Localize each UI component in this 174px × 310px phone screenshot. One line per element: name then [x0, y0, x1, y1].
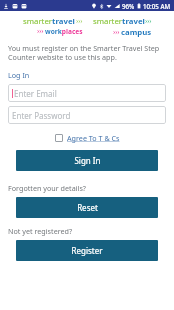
staticText: Not yet registered?: [8, 226, 73, 236]
staticText: workplaces: [45, 27, 83, 36]
button[interactable]: Register: [16, 240, 158, 261]
staticText: smartertravel: [93, 16, 145, 27]
staticText: campus: [121, 27, 152, 38]
staticText: Forgotten your details?: [8, 183, 86, 193]
button[interactable]: Reset: [16, 197, 158, 218]
staticText: Register: [71, 245, 103, 256]
staticText: 96%: [122, 2, 135, 10]
staticText: smartertravel: [23, 16, 75, 27]
staticText: Enter Password: [12, 110, 71, 121]
button[interactable]: Agree to terms checkbox: [52, 131, 123, 145]
other: Agree to terms checkbox: [55, 134, 63, 142]
staticText: Log In: [8, 70, 30, 80]
button[interactable]: Enter Password: [8, 106, 166, 124]
button[interactable]: Enter Email: [8, 84, 166, 102]
staticText: Reset: [77, 202, 98, 213]
staticText: Enter Email: [14, 88, 57, 99]
staticText: Sign In: [74, 155, 101, 166]
staticText: Agree To T & Cs: [67, 133, 120, 143]
staticText: You must register on the Smarter Travel …: [8, 43, 160, 63]
button[interactable]: Sign In: [16, 150, 158, 171]
staticText: 10:05 AM: [143, 2, 171, 10]
